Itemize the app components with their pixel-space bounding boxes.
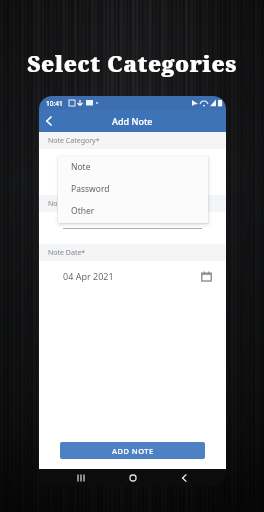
button[interactable]: Password (58, 178, 208, 200)
staticText: Other (71, 205, 95, 217)
button[interactable]: ADD NOTE (60, 442, 205, 459)
button[interactable]: Other (58, 200, 208, 222)
other: Pick date (201, 271, 212, 282)
staticText: Add Note (112, 115, 153, 127)
button[interactable]: Note (58, 156, 208, 178)
button[interactable]: 04 Apr 2021 (39, 261, 226, 291)
staticText: Note Category* (48, 136, 100, 146)
button[interactable]: Back (173, 469, 197, 486)
staticText: Select Categories (27, 48, 237, 78)
button[interactable]: Back (39, 110, 61, 132)
staticText: Note (71, 161, 91, 173)
staticText: Note Date* (48, 248, 86, 258)
staticText: Note Content* (48, 199, 97, 209)
staticText: Password (71, 183, 110, 195)
button[interactable]: Home (121, 469, 145, 486)
button[interactable]: Recents (68, 469, 92, 486)
staticText: 04 Apr 2021 (63, 270, 114, 282)
staticText: ADD NOTE (112, 446, 154, 456)
staticText: 10:41 (46, 99, 63, 108)
